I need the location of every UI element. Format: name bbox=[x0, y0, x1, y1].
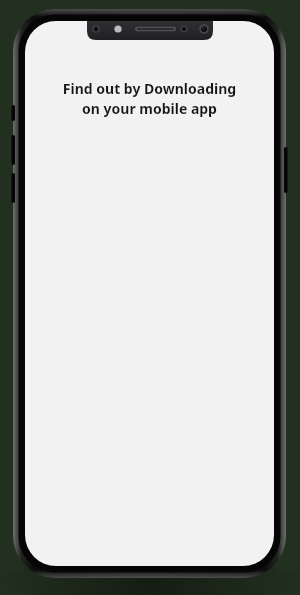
button[interactable]: Find out by Downloading on your mobile a… bbox=[37, 79, 262, 119]
other: Front camera and sensors bbox=[87, 21, 213, 40]
